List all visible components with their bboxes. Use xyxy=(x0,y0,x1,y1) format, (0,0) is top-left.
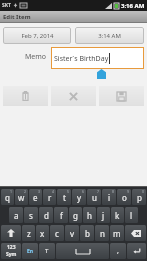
button[interactable]: 2 xyxy=(15,189,28,205)
staticText: 4 xyxy=(52,189,55,194)
staticText: v xyxy=(70,228,75,239)
staticText: t xyxy=(63,192,66,203)
button[interactable]: Sister`s BirthDay xyxy=(51,47,144,69)
button[interactable]: c xyxy=(50,225,64,241)
staticText: 3 xyxy=(38,189,41,194)
button[interactable]: v xyxy=(65,225,79,241)
button[interactable]: s xyxy=(24,207,38,223)
button[interactable]: 5 xyxy=(57,189,71,205)
button[interactable]: 4 xyxy=(43,189,56,205)
staticText: 8 xyxy=(112,189,115,194)
button[interactable]: z xyxy=(22,225,35,241)
staticText: j xyxy=(102,210,105,221)
staticText: r xyxy=(48,192,52,203)
button[interactable]: 0 xyxy=(132,189,146,205)
staticText: x xyxy=(40,228,45,239)
button[interactable]: h xyxy=(83,207,96,223)
staticText: 0 xyxy=(142,189,145,194)
staticText: o xyxy=(122,192,127,203)
button[interactable]: f xyxy=(54,207,68,223)
staticText: T xyxy=(45,247,49,255)
staticText: 7 xyxy=(97,189,100,194)
button[interactable]: Symbols xyxy=(1,243,21,259)
button[interactable]: 3 xyxy=(29,189,42,205)
staticText: b xyxy=(85,228,90,239)
staticText: h xyxy=(87,210,92,221)
staticText: e xyxy=(33,192,38,203)
staticText: k xyxy=(115,210,120,221)
button[interactable]: 1 xyxy=(1,189,14,205)
button[interactable]: j xyxy=(97,207,110,223)
staticText: En xyxy=(27,248,34,255)
staticText: w xyxy=(18,192,25,203)
staticText: 9 xyxy=(127,189,130,194)
button[interactable]: g xyxy=(69,207,82,223)
button[interactable]: b xyxy=(80,225,94,241)
staticText: q xyxy=(5,192,10,203)
staticText: n xyxy=(100,228,105,239)
staticText: Sister`s BirthDay xyxy=(54,54,109,64)
button[interactable]: d xyxy=(39,207,53,223)
button[interactable]: 9 xyxy=(117,189,131,205)
button[interactable]: l xyxy=(125,207,138,223)
staticText: 123 xyxy=(7,244,16,251)
button[interactable]: Language xyxy=(22,243,38,259)
staticText: z xyxy=(27,228,31,239)
button[interactable]: Backspace xyxy=(125,225,146,241)
staticText: Feb 7, 2014 xyxy=(21,32,54,40)
staticText: s xyxy=(29,210,33,221)
button[interactable]: Comma xyxy=(110,243,126,259)
button[interactable]: x xyxy=(36,225,49,241)
staticText: g xyxy=(73,210,78,221)
button[interactable]: Delete xyxy=(3,86,48,106)
button[interactable]: Enter xyxy=(127,243,146,259)
staticText: Memo xyxy=(25,52,47,62)
button[interactable]: n xyxy=(95,225,109,241)
staticText: m xyxy=(113,228,121,239)
staticText: i xyxy=(108,192,111,203)
staticText: Edit Item xyxy=(3,13,31,21)
staticText: SKT xyxy=(2,2,11,9)
staticText: d xyxy=(44,210,49,221)
staticText: 6 xyxy=(82,189,85,194)
button[interactable]: Shift xyxy=(1,225,21,241)
staticText: u xyxy=(92,192,97,203)
button[interactable]: Space xyxy=(56,243,109,259)
button[interactable]: m xyxy=(110,225,124,241)
staticText: 3:16 AM xyxy=(121,2,145,10)
button[interactable]: Feb 7, 2014 xyxy=(3,27,71,44)
staticText: Sym xyxy=(6,251,17,258)
staticText: p xyxy=(137,192,142,203)
staticText: l xyxy=(130,210,133,221)
staticText: , xyxy=(117,246,119,256)
button[interactable]: 6 xyxy=(72,189,86,205)
button[interactable]: Handwriting xyxy=(39,243,55,259)
button[interactable]: Cancel xyxy=(51,86,96,106)
staticText: f xyxy=(60,210,63,221)
button[interactable]: 3:14 AM xyxy=(75,27,144,44)
button[interactable]: Save xyxy=(99,86,144,106)
button[interactable]: a xyxy=(9,207,23,223)
staticText: 2 xyxy=(24,189,27,194)
staticText: 1 xyxy=(10,189,13,194)
staticText: a xyxy=(14,210,19,221)
button[interactable]: 8 xyxy=(102,189,116,205)
staticText: y xyxy=(77,192,82,203)
button[interactable]: k xyxy=(111,207,124,223)
staticText: 3:14 AM xyxy=(98,32,121,40)
button[interactable]: 7 xyxy=(87,189,101,205)
staticText: c xyxy=(55,228,59,239)
staticText: 5 xyxy=(67,189,70,194)
